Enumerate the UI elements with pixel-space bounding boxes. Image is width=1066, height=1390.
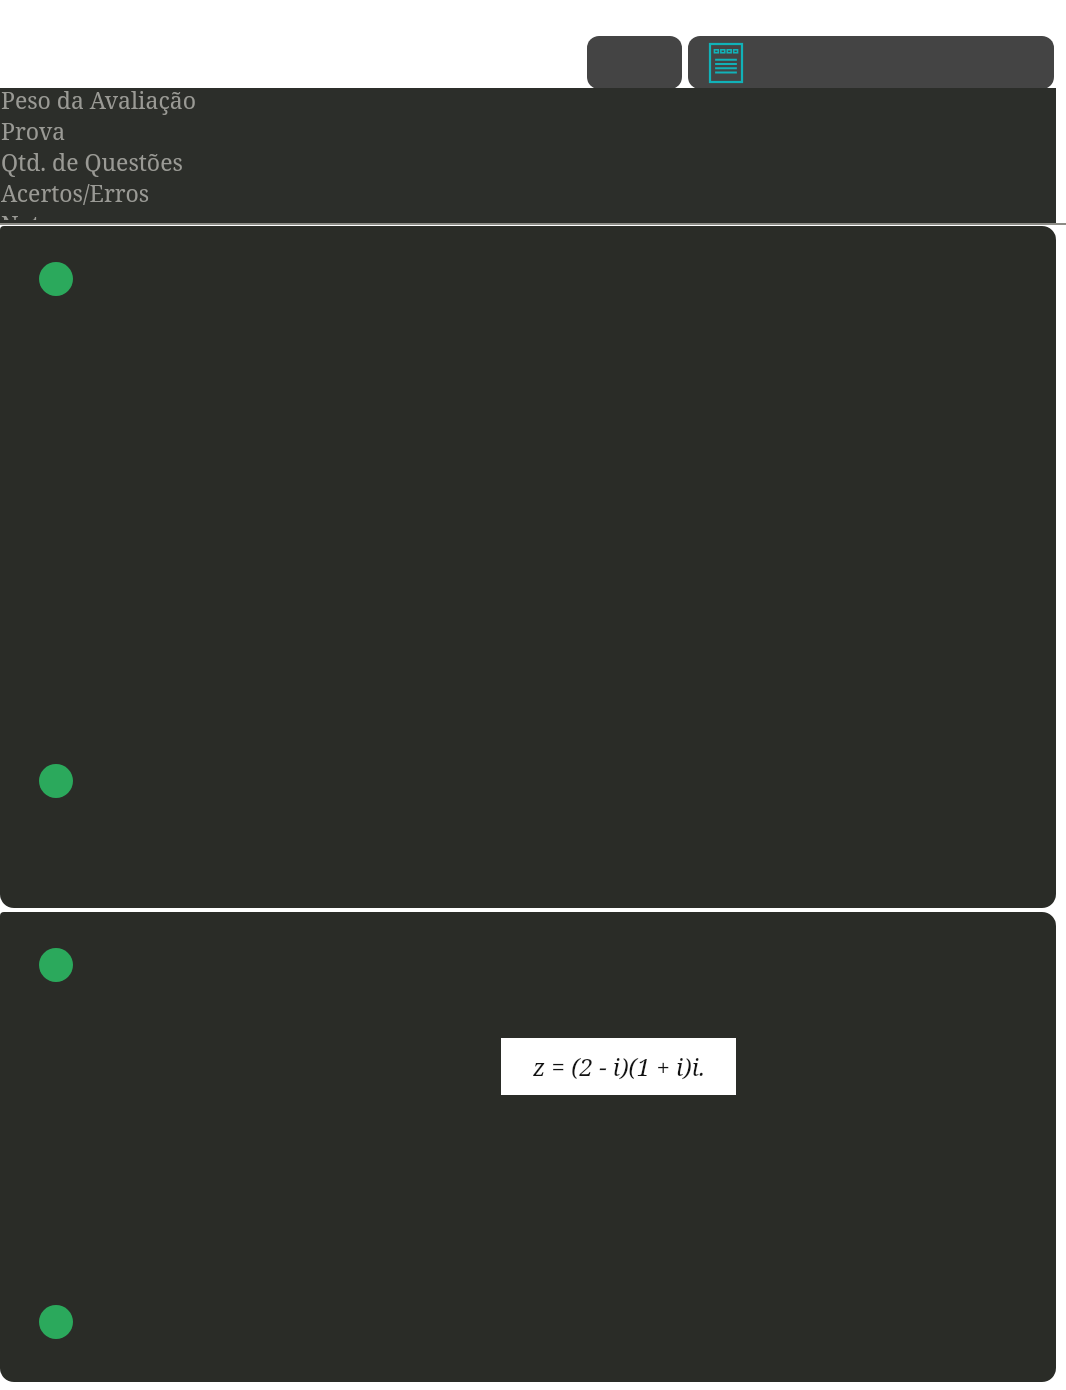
button[interactable]: Ação (587, 36, 682, 89)
staticText: Prova (1, 115, 66, 146)
staticText: Qtd. de Questões (1, 146, 183, 177)
staticText: z = (2 − i)(1 + i)i. (533, 1050, 705, 1083)
staticText: Peso da Avaliação (1, 84, 196, 115)
button[interactable] (0, 226, 1056, 908)
staticText: Acertos/Erros (1, 177, 150, 208)
button[interactable]: Documento (688, 36, 1054, 89)
staticText: Nota (1, 208, 53, 220)
button[interactable]: z = (2 − i)(1 + i)i. (0, 912, 1056, 1382)
